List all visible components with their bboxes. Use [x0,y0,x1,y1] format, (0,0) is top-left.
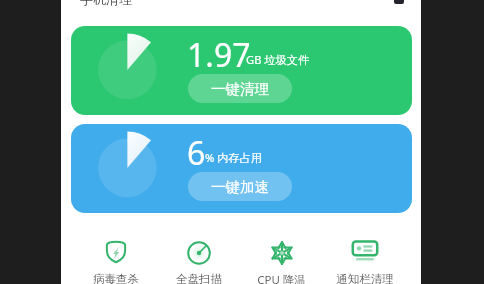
staticText: 全盘扫描 [176,272,222,284]
staticText: 1.97 [187,33,251,77]
button[interactable]: CPU 降温 [240,241,323,284]
button[interactable]: 6 [71,124,412,213]
button[interactable]: 1.97 [71,26,412,115]
button[interactable]: 手机清理 [80,0,132,11]
button[interactable]: 全盘扫描 [157,241,240,284]
staticText: CPU 降温 [257,272,306,284]
staticText: 一键清理 [211,80,269,98]
staticText: % 内存占用 [205,150,262,165]
button[interactable]: 更多 [389,0,413,9]
other: 通知栏清理 [352,240,378,264]
staticText: 6 [187,131,206,175]
other: CPU 降温 [270,241,294,265]
staticText: 病毒查杀 [93,272,139,284]
button[interactable]: 通知栏清理 [323,241,406,284]
button[interactable]: 一键清理 [188,74,292,103]
staticText: 手机清理 [80,0,132,7]
other: 全盘扫描 [187,241,211,265]
staticText: 通知栏清理 [336,272,394,284]
staticText: 一键加速 [211,178,269,196]
button[interactable]: 一键加速 [188,172,292,201]
other: 病毒查杀 [104,239,128,263]
staticText: GB 垃圾文件 [246,52,310,67]
button[interactable]: 病毒查杀 [74,241,157,284]
